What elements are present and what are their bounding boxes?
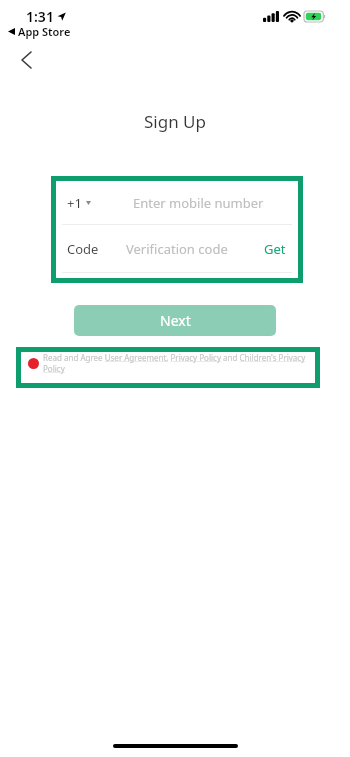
button[interactable]: Next (74, 305, 276, 336)
staticText: Get (264, 240, 286, 258)
staticText: Next (160, 311, 191, 330)
staticText: Enter mobile number (133, 194, 264, 212)
button[interactable]: Get (258, 234, 292, 264)
staticText: Verification code (126, 240, 228, 258)
button[interactable]: Back (8, 42, 44, 78)
staticText: Code (67, 240, 99, 258)
button[interactable]: Agree to terms (21, 352, 315, 383)
staticText: +1 (67, 194, 82, 212)
staticText: App Store (18, 24, 71, 39)
staticText: Sign Up (144, 110, 206, 133)
staticText: Read and Agree User Agreement, Privacy P… (43, 352, 315, 374)
button[interactable]: +1 (56, 181, 298, 224)
staticText: 1:31 (26, 7, 54, 26)
other: Agree to terms (28, 358, 39, 369)
